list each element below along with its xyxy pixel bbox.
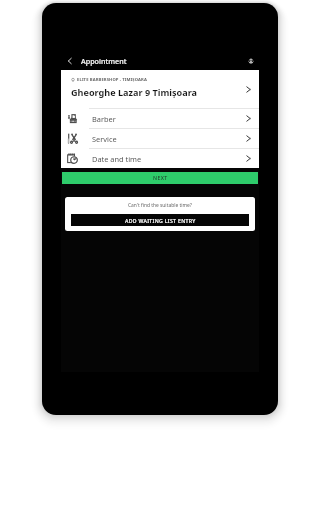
staticText: Barber xyxy=(92,114,116,124)
button[interactable]: Service xyxy=(61,129,259,148)
staticText: Service xyxy=(92,134,117,144)
button[interactable]: Back xyxy=(61,51,78,70)
staticText: Can't find the suitable time? xyxy=(128,202,192,209)
button[interactable]: Account xyxy=(244,54,257,67)
staticText: NEXT xyxy=(153,174,168,181)
button[interactable]: Barber xyxy=(61,109,259,128)
staticText: Date and time xyxy=(92,154,142,164)
button[interactable]: Date and time xyxy=(61,149,259,168)
button[interactable]: NEXT xyxy=(62,172,258,184)
staticText: ELITE BARBERSHOP - TIMIȘOARA xyxy=(77,77,147,83)
button[interactable]: ADD WAITING LIST ENTRY xyxy=(71,214,249,226)
button[interactable]: ELITE BARBERSHOP - TIMIȘOARA xyxy=(61,70,259,108)
staticText: Appointment xyxy=(81,56,127,66)
staticText: Gheorghe Lazar 9 Timișoara xyxy=(71,86,198,98)
staticText: ADD WAITING LIST ENTRY xyxy=(125,217,196,224)
